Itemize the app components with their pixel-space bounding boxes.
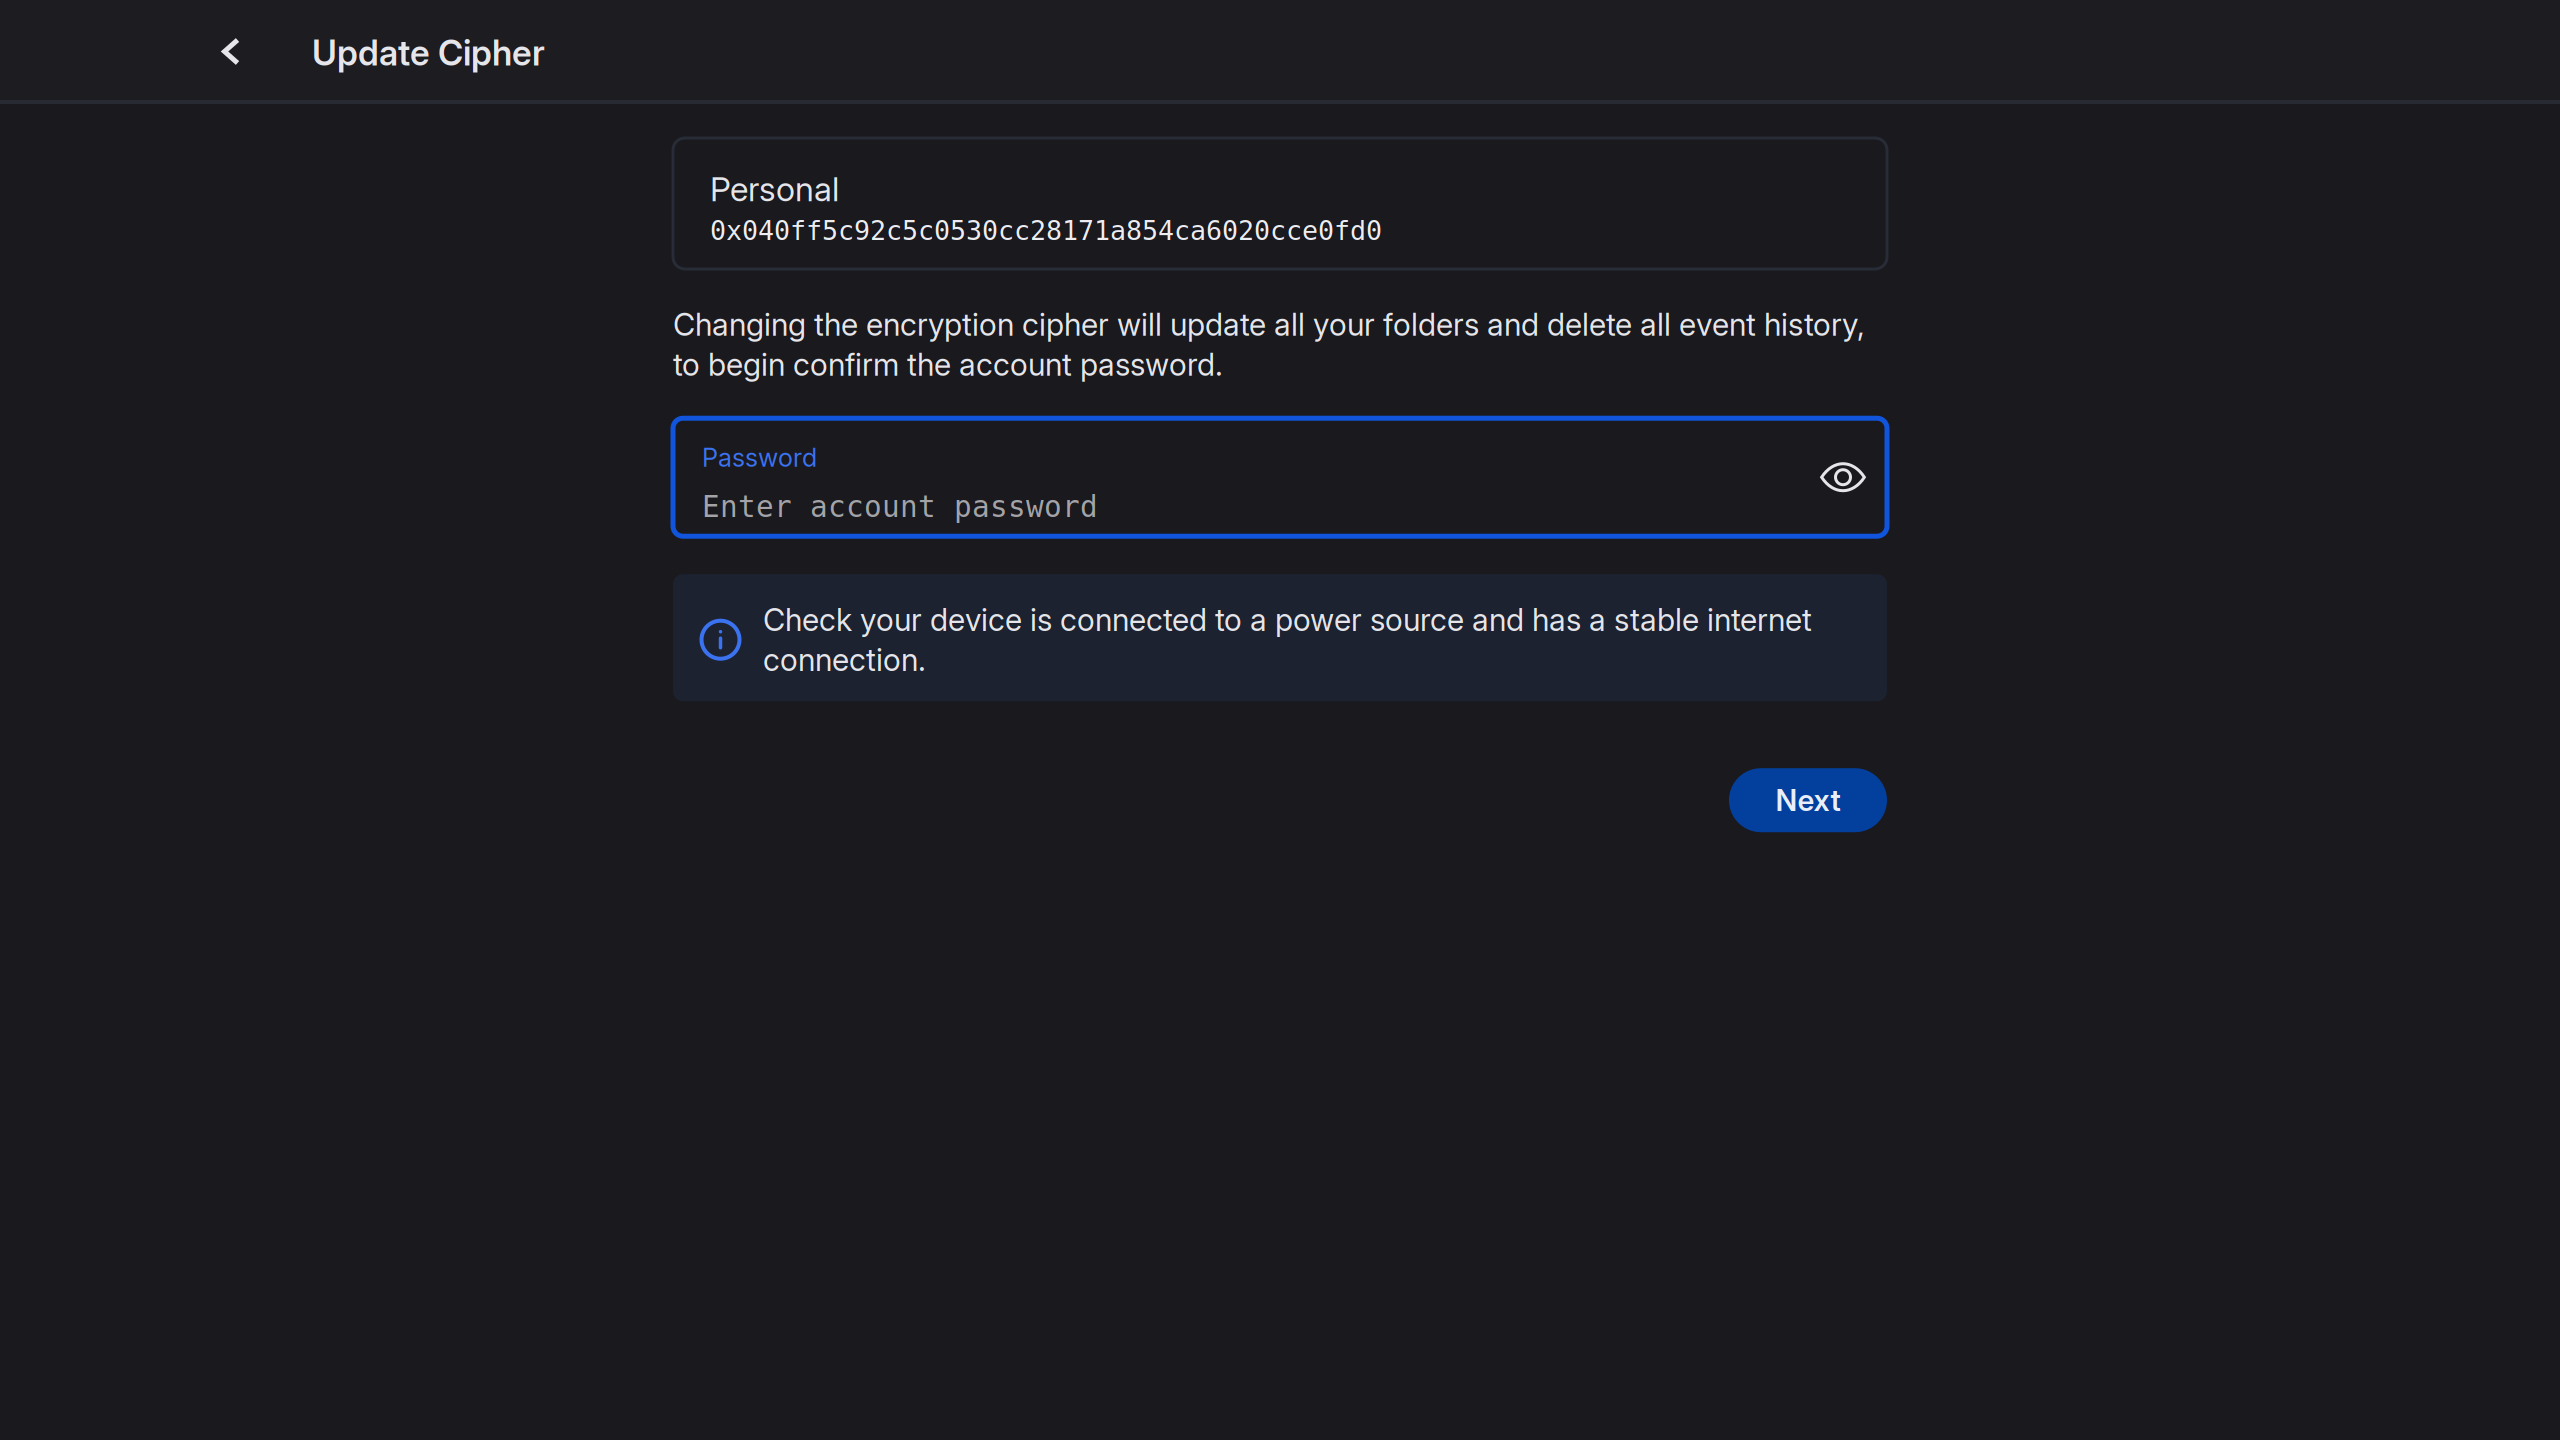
- staticText: Check your device is connected to a powe…: [763, 601, 1812, 678]
- staticText: 0x040ff5c92c5c0530cc28171a854ca6020cce0f…: [710, 215, 1382, 246]
- staticText: Personal: [710, 169, 839, 209]
- button[interactable]: Next: [1729, 768, 1887, 832]
- staticText: Changing the encryption cipher will upda…: [673, 306, 1865, 383]
- staticText: Next: [1775, 782, 1840, 818]
- staticText: Update Cipher: [312, 32, 545, 74]
- button[interactable]: Show password: [1815, 449, 1871, 505]
- button[interactable]: Back: [199, 17, 263, 85]
- button[interactable]: Password: [702, 418, 1702, 536]
- staticText: Enter account password: [702, 490, 1098, 524]
- staticText: Password: [702, 442, 817, 473]
